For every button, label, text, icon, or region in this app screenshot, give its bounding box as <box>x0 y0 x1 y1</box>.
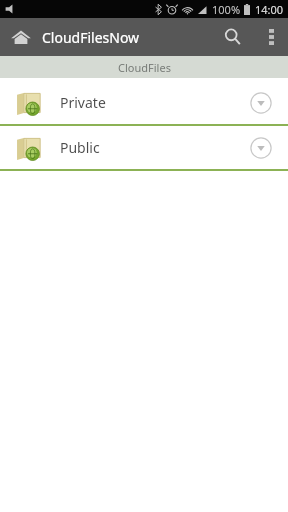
staticText: Public <box>60 138 100 157</box>
button[interactable]: Expand Public <box>244 131 278 165</box>
staticText: Private <box>60 93 106 112</box>
button[interactable]: More options <box>254 18 288 56</box>
button[interactable]: Expand Private <box>244 86 278 120</box>
button[interactable]: Public <box>0 126 288 169</box>
staticText: 100% <box>212 2 241 17</box>
staticText: CloudFiles <box>118 60 171 75</box>
staticText: CloudFilesNow <box>42 28 140 47</box>
button[interactable]: Private <box>0 81 288 124</box>
button[interactable]: CloudFilesNow <box>10 26 144 48</box>
staticText: 14:00 <box>255 2 284 17</box>
button[interactable]: Search <box>212 18 254 56</box>
